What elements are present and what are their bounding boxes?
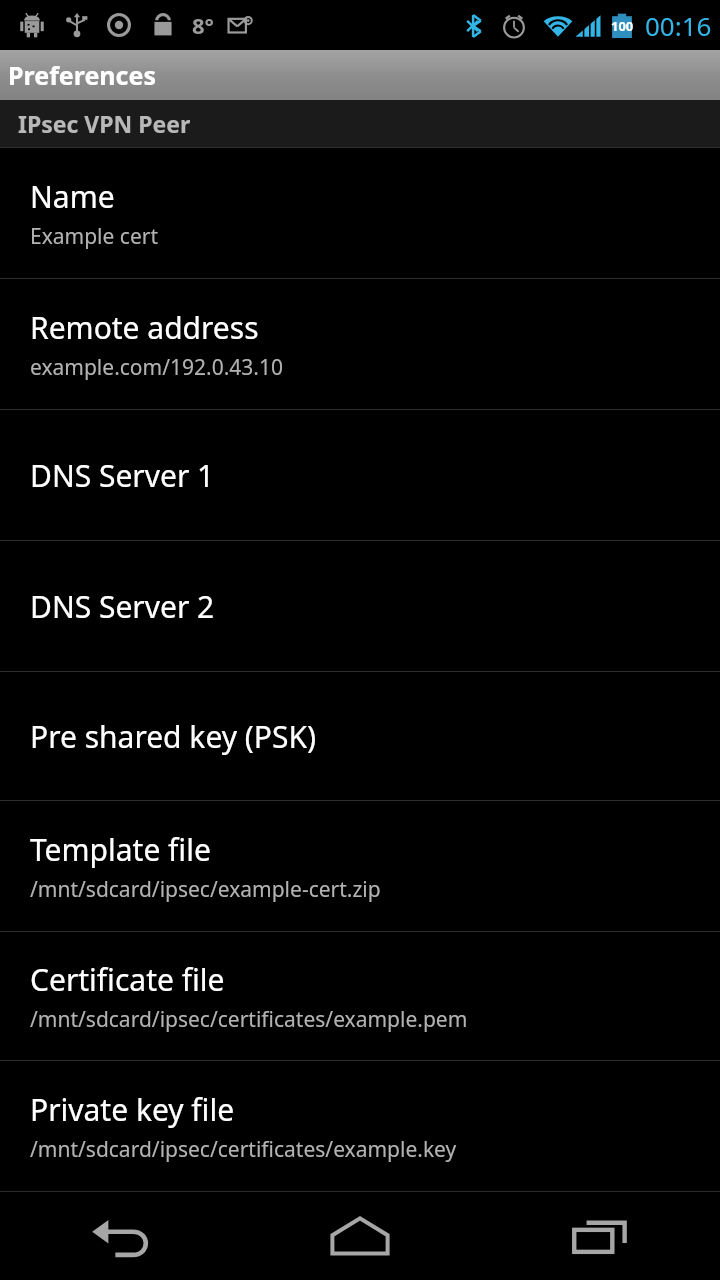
staticText: Private key file — [30, 1089, 235, 1130]
staticText: /mnt/sdcard/ipsec/certificates/example.p… — [30, 1005, 468, 1034]
button[interactable]: DNS Server 2 — [0, 541, 720, 671]
staticText: 00:16 — [645, 8, 712, 43]
staticText: Example cert — [30, 222, 159, 251]
button[interactable]: Private key file — [0, 1061, 720, 1191]
staticText: Template file — [30, 829, 211, 870]
staticText: DNS Server 2 — [30, 586, 215, 627]
button[interactable]: Name — [0, 148, 720, 278]
staticText: Certificate file — [30, 959, 225, 1000]
button[interactable]: Certificate file — [0, 932, 720, 1060]
button[interactable]: Back — [0, 1192, 240, 1280]
button[interactable]: Remote address — [0, 279, 720, 409]
button[interactable]: Pre shared key (PSK) — [0, 672, 720, 800]
staticText: 8° — [192, 10, 214, 40]
staticText: example.com/192.0.43.10 — [30, 353, 283, 382]
button[interactable]: Recent apps — [480, 1192, 720, 1280]
button[interactable]: DNS Server 1 — [0, 410, 720, 540]
staticText: Remote address — [30, 307, 259, 348]
staticText: Pre shared key (PSK) — [30, 716, 316, 757]
button[interactable]: Template file — [0, 801, 720, 931]
staticText: /mnt/sdcard/ipsec/certificates/example.k… — [30, 1135, 457, 1164]
staticText: Name — [30, 176, 115, 217]
button[interactable]: Home — [240, 1192, 480, 1280]
staticText: Preferences — [8, 58, 156, 92]
staticText: DNS Server 1 — [30, 455, 215, 496]
staticText: IPsec VPN Peer — [18, 108, 191, 139]
staticText: /mnt/sdcard/ipsec/example-cert.zip — [30, 875, 381, 904]
staticText: 100 — [611, 17, 634, 35]
